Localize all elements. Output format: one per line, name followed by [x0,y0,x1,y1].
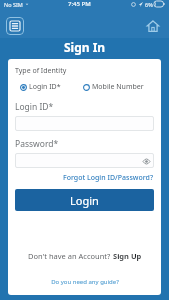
button[interactable]: Do you need any guide? [8,278,161,286]
staticText: Login ID* [15,101,54,113]
staticText: No SIM [4,1,23,8]
button[interactable]: Sign Up [113,251,142,261]
button[interactable]: Menu [6,17,24,35]
button[interactable]: Mobile Number [83,82,144,92]
staticText: 6% [145,1,153,8]
button[interactable]: Show password [142,157,150,165]
staticText: Mobile Number [92,82,144,92]
button[interactable]: Home [144,17,162,35]
button[interactable]: Login ID* [20,82,61,92]
staticText: Login [70,193,99,208]
button[interactable]: Forgot Login ID/Password? [63,173,154,183]
staticText: Don't have an Account? [28,251,113,261]
staticText: Type of Identity [15,66,67,76]
staticText: Login ID* [29,82,61,92]
staticText: Sign In [64,39,106,55]
staticText: Sign Up [113,251,142,261]
staticText: 7:45 PM [68,0,91,8]
staticText: Do you need any guide? [51,278,119,286]
button[interactable]: Show password [15,153,154,168]
button[interactable] [15,116,154,131]
staticText: Forgot Login ID/Password? [63,173,154,183]
button[interactable]: Login [15,189,154,211]
staticText: Password* [15,138,59,150]
